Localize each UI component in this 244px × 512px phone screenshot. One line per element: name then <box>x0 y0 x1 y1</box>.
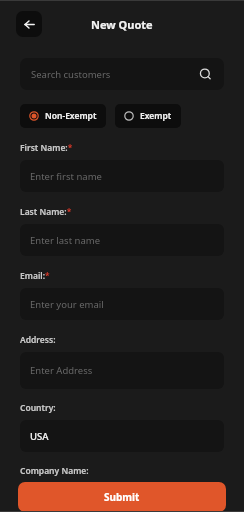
button[interactable]: USA <box>20 420 224 452</box>
staticText: USA <box>30 430 49 443</box>
button[interactable]: Enter Address <box>20 352 224 389</box>
button[interactable]: Exempt <box>115 104 181 128</box>
staticText: Enter first name <box>30 170 102 183</box>
button[interactable]: Search <box>197 66 213 82</box>
staticText: Non-Exempt <box>45 110 97 122</box>
button[interactable]: Back <box>16 11 42 37</box>
staticText: Address: <box>20 334 56 346</box>
button[interactable]: Submit <box>18 482 226 512</box>
staticText: Enter Address <box>30 364 93 377</box>
staticText: Submit <box>104 490 140 504</box>
staticText: Search customers <box>31 68 111 81</box>
staticText: Company Name: <box>20 465 89 477</box>
button[interactable]: Enter first name <box>20 160 224 192</box>
button[interactable]: Enter last name <box>20 224 224 256</box>
button[interactable]: Enter your email <box>20 288 224 320</box>
staticText: Enter your email <box>30 298 104 311</box>
staticText: Email:* <box>20 270 50 282</box>
staticText: First Name:* <box>20 142 73 154</box>
staticText: Country: <box>20 402 56 414</box>
staticText: Exempt <box>140 110 172 122</box>
button[interactable]: Non-Exempt <box>20 104 106 128</box>
staticText: New Quote <box>91 17 153 32</box>
button[interactable]: Search customers <box>20 58 224 90</box>
staticText: Enter last name <box>30 234 101 247</box>
staticText: Last Name:* <box>20 206 72 218</box>
